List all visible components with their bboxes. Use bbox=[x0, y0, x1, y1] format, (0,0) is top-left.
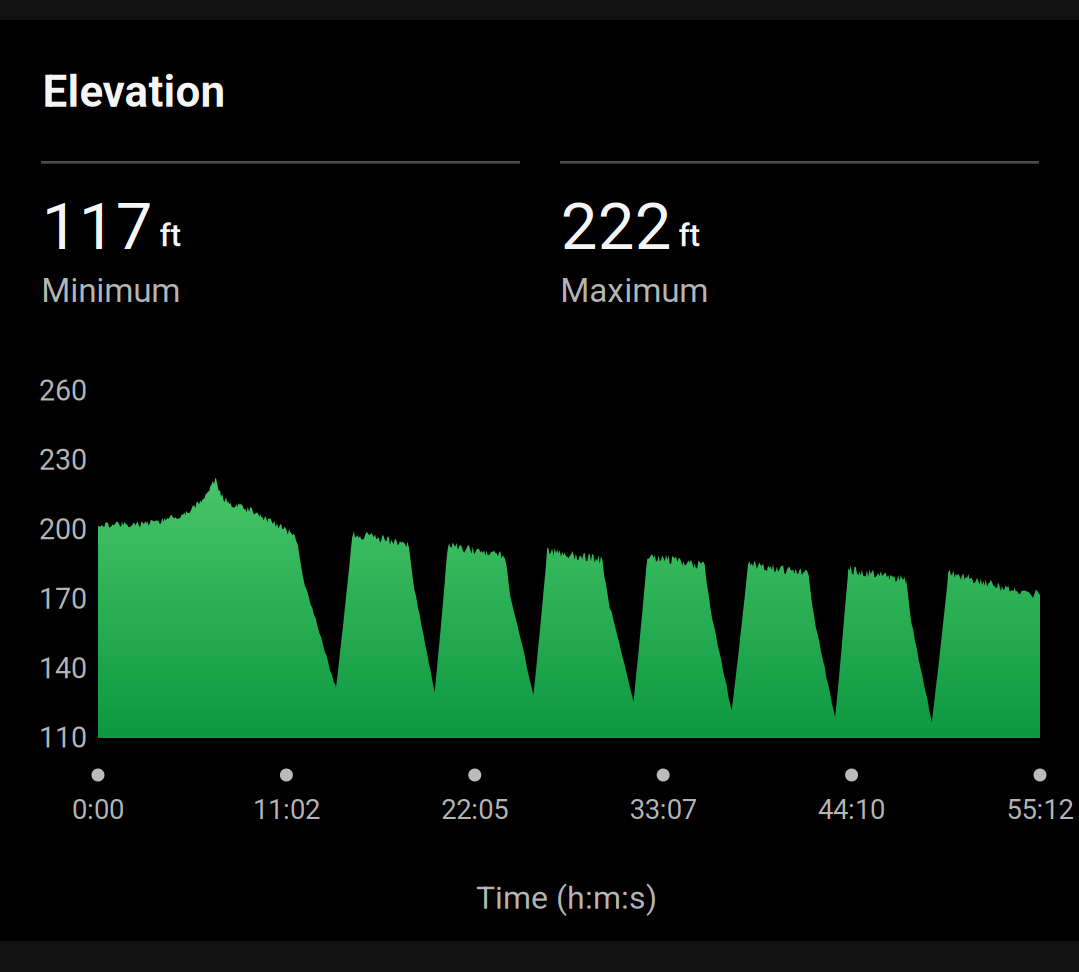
staticText: ft bbox=[160, 216, 182, 254]
staticText: 200 bbox=[39, 513, 87, 546]
staticText: 55:12 bbox=[1006, 794, 1073, 826]
staticText: 230 bbox=[39, 443, 87, 477]
staticText: Elevation bbox=[42, 66, 225, 118]
staticText: 11:02 bbox=[253, 794, 320, 826]
staticText: 22:05 bbox=[441, 794, 508, 826]
staticText: 33:07 bbox=[630, 794, 697, 826]
staticText: Time (h:m:s) bbox=[476, 879, 657, 916]
button[interactable]: 222 bbox=[560, 161, 1039, 301]
staticText: Minimum bbox=[41, 271, 180, 310]
staticText: 222 bbox=[561, 188, 672, 265]
staticText: 0:00 bbox=[72, 794, 124, 826]
staticText: 140 bbox=[39, 652, 87, 685]
staticText: 170 bbox=[39, 582, 87, 616]
staticText: 117 bbox=[42, 188, 153, 265]
staticText: Maximum bbox=[560, 271, 708, 310]
staticText: ft bbox=[679, 216, 701, 254]
staticText: 44:10 bbox=[818, 794, 885, 826]
staticText: 110 bbox=[39, 721, 87, 755]
button[interactable]: 117 bbox=[41, 161, 520, 301]
staticText: 260 bbox=[39, 374, 87, 407]
